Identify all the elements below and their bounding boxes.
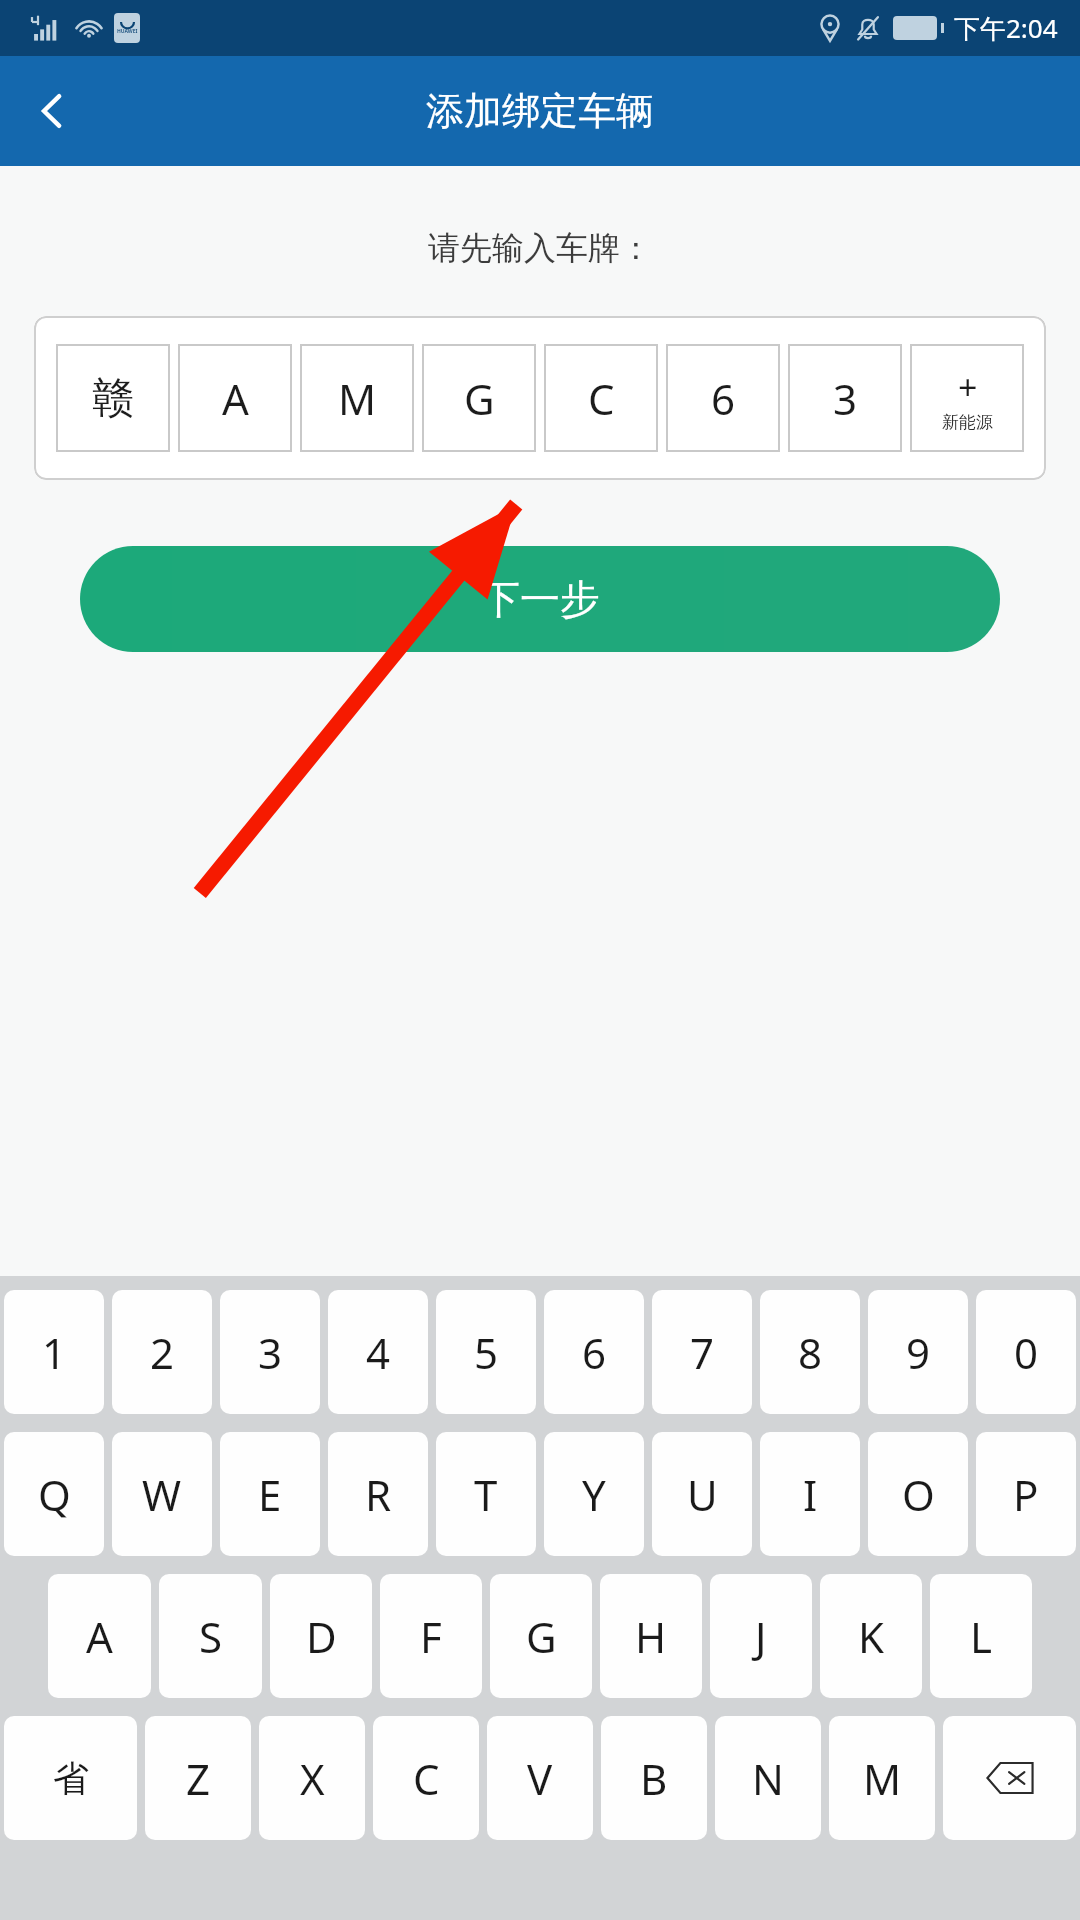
- staticText: P: [1013, 1466, 1039, 1523]
- button[interactable]: S: [159, 1574, 262, 1698]
- staticText: C: [413, 1750, 440, 1807]
- staticText: G: [526, 1608, 557, 1665]
- staticText: 6: [582, 1324, 607, 1381]
- staticText: S: [199, 1608, 223, 1665]
- staticText: 下午2:04: [954, 10, 1058, 46]
- button[interactable]: Z: [145, 1716, 251, 1840]
- button[interactable]: 7: [652, 1290, 752, 1414]
- staticText: 3: [258, 1324, 283, 1381]
- staticText: 请先输入车牌：: [428, 228, 652, 268]
- button[interactable]: 省: [4, 1716, 137, 1840]
- button[interactable]: I: [760, 1432, 860, 1556]
- button[interactable]: 返回: [14, 73, 90, 149]
- staticText: M: [863, 1750, 902, 1807]
- button[interactable]: D: [270, 1574, 372, 1698]
- button[interactable]: 6: [666, 344, 780, 452]
- button[interactable]: Q: [4, 1432, 104, 1556]
- button[interactable]: 下一步: [80, 546, 1000, 652]
- staticText: HUAWEI: [117, 28, 138, 35]
- button[interactable]: J: [710, 1574, 812, 1698]
- button[interactable]: 赣: [34, 316, 1046, 480]
- staticText: 下一步: [480, 574, 600, 624]
- button[interactable]: M: [300, 344, 414, 452]
- button[interactable]: 5: [436, 1290, 536, 1414]
- staticText: 0: [1014, 1324, 1039, 1381]
- button[interactable]: T: [436, 1432, 536, 1556]
- button[interactable]: B: [601, 1716, 707, 1840]
- staticText: M: [338, 370, 377, 427]
- button[interactable]: O: [868, 1432, 968, 1556]
- button[interactable]: K: [820, 1574, 922, 1698]
- button[interactable]: 4: [328, 1290, 428, 1414]
- button[interactable]: V: [487, 1716, 593, 1840]
- staticText: X: [300, 1750, 325, 1807]
- button[interactable]: 1: [4, 1290, 104, 1414]
- staticText: 9: [906, 1324, 931, 1381]
- staticText: N: [752, 1750, 784, 1807]
- staticText: Y: [582, 1466, 606, 1523]
- staticText: I: [803, 1466, 818, 1523]
- button[interactable]: M: [829, 1716, 935, 1840]
- button[interactable]: U: [652, 1432, 752, 1556]
- staticText: 6: [711, 370, 736, 427]
- staticText: H: [635, 1608, 667, 1665]
- staticText: E: [258, 1466, 282, 1523]
- staticText: 省: [53, 1756, 89, 1801]
- staticText: Q: [38, 1466, 71, 1523]
- button[interactable]: +: [910, 344, 1024, 452]
- staticText: O: [902, 1466, 935, 1523]
- staticText: C: [588, 370, 615, 427]
- button[interactable]: C: [373, 1716, 479, 1840]
- button[interactable]: 删除: [943, 1716, 1076, 1840]
- staticText: 2: [150, 1324, 175, 1381]
- staticText: A: [222, 370, 249, 427]
- staticText: L: [970, 1608, 993, 1665]
- staticText: W: [142, 1466, 182, 1523]
- button[interactable]: H: [600, 1574, 702, 1698]
- button[interactable]: G: [490, 1574, 592, 1698]
- button[interactable]: W: [112, 1432, 212, 1556]
- staticText: R: [365, 1466, 392, 1523]
- staticText: +: [958, 364, 978, 410]
- staticText: 新能源: [942, 412, 993, 433]
- staticText: Z: [186, 1750, 211, 1807]
- button[interactable]: C: [544, 344, 658, 452]
- button[interactable]: E: [220, 1432, 320, 1556]
- button[interactable]: A: [48, 1574, 151, 1698]
- button[interactable]: 0: [976, 1290, 1076, 1414]
- staticText: U: [687, 1466, 718, 1523]
- staticText: 赣: [92, 372, 134, 425]
- staticText: G: [464, 370, 495, 427]
- button[interactable]: A: [178, 344, 292, 452]
- button[interactable]: Y: [544, 1432, 644, 1556]
- button[interactable]: R: [328, 1432, 428, 1556]
- staticText: K: [858, 1608, 884, 1665]
- button[interactable]: F: [380, 1574, 482, 1698]
- staticText: 1: [42, 1324, 67, 1381]
- staticText: 添加绑定车辆: [426, 87, 654, 135]
- button[interactable]: 6: [544, 1290, 644, 1414]
- staticText: T: [474, 1466, 498, 1523]
- staticText: 5: [474, 1324, 499, 1381]
- button[interactable]: N: [715, 1716, 821, 1840]
- staticText: 7: [690, 1324, 715, 1381]
- button[interactable]: L: [930, 1574, 1032, 1698]
- button[interactable]: 8: [760, 1290, 860, 1414]
- staticText: V: [527, 1750, 553, 1807]
- staticText: 4: [366, 1324, 391, 1381]
- button[interactable]: 3: [788, 344, 902, 452]
- staticText: J: [755, 1608, 767, 1665]
- button[interactable]: 3: [220, 1290, 320, 1414]
- button[interactable]: 2: [112, 1290, 212, 1414]
- button[interactable]: X: [259, 1716, 365, 1840]
- staticText: 8: [798, 1324, 823, 1381]
- staticText: 3: [833, 370, 858, 427]
- button[interactable]: 9: [868, 1290, 968, 1414]
- staticText: D: [306, 1608, 337, 1665]
- button[interactable]: 赣: [56, 344, 170, 452]
- staticText: A: [86, 1608, 113, 1665]
- button[interactable]: G: [422, 344, 536, 452]
- staticText: F: [420, 1608, 442, 1665]
- button[interactable]: P: [976, 1432, 1076, 1556]
- staticText: B: [640, 1750, 668, 1807]
